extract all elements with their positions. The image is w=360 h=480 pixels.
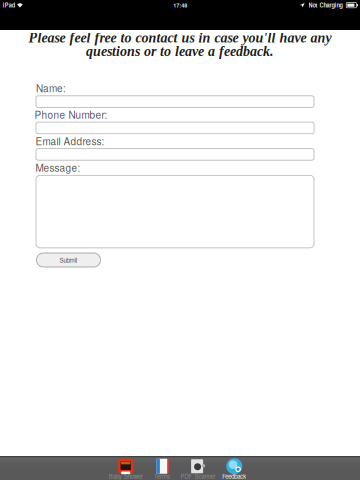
staticText: Message: <box>35 160 80 175</box>
staticText: 17:48 <box>173 1 187 9</box>
staticText: Terms <box>154 472 170 480</box>
staticText: Baby Shower <box>109 472 143 480</box>
button[interactable]: PDF Scanner <box>180 458 216 480</box>
staticText: Please feel free to contact us in case y… <box>28 30 331 45</box>
staticText: Phone Number: <box>34 107 107 122</box>
button[interactable]: Terms <box>144 458 180 480</box>
staticText: questions or to leave a feedback. <box>86 43 274 59</box>
button[interactable]: Baby Shower <box>108 458 144 480</box>
button[interactable]: Feedback <box>216 458 252 480</box>
staticText: Not Charging <box>308 1 342 9</box>
button[interactable]: Submit <box>36 253 100 267</box>
staticText: iPad <box>3 1 15 9</box>
staticText: Email Address: <box>35 134 104 148</box>
staticText: Submit <box>59 256 77 264</box>
staticText: PDF Scanner <box>181 472 216 480</box>
staticText: Name: <box>36 81 66 95</box>
staticText: Feedback <box>222 472 246 480</box>
